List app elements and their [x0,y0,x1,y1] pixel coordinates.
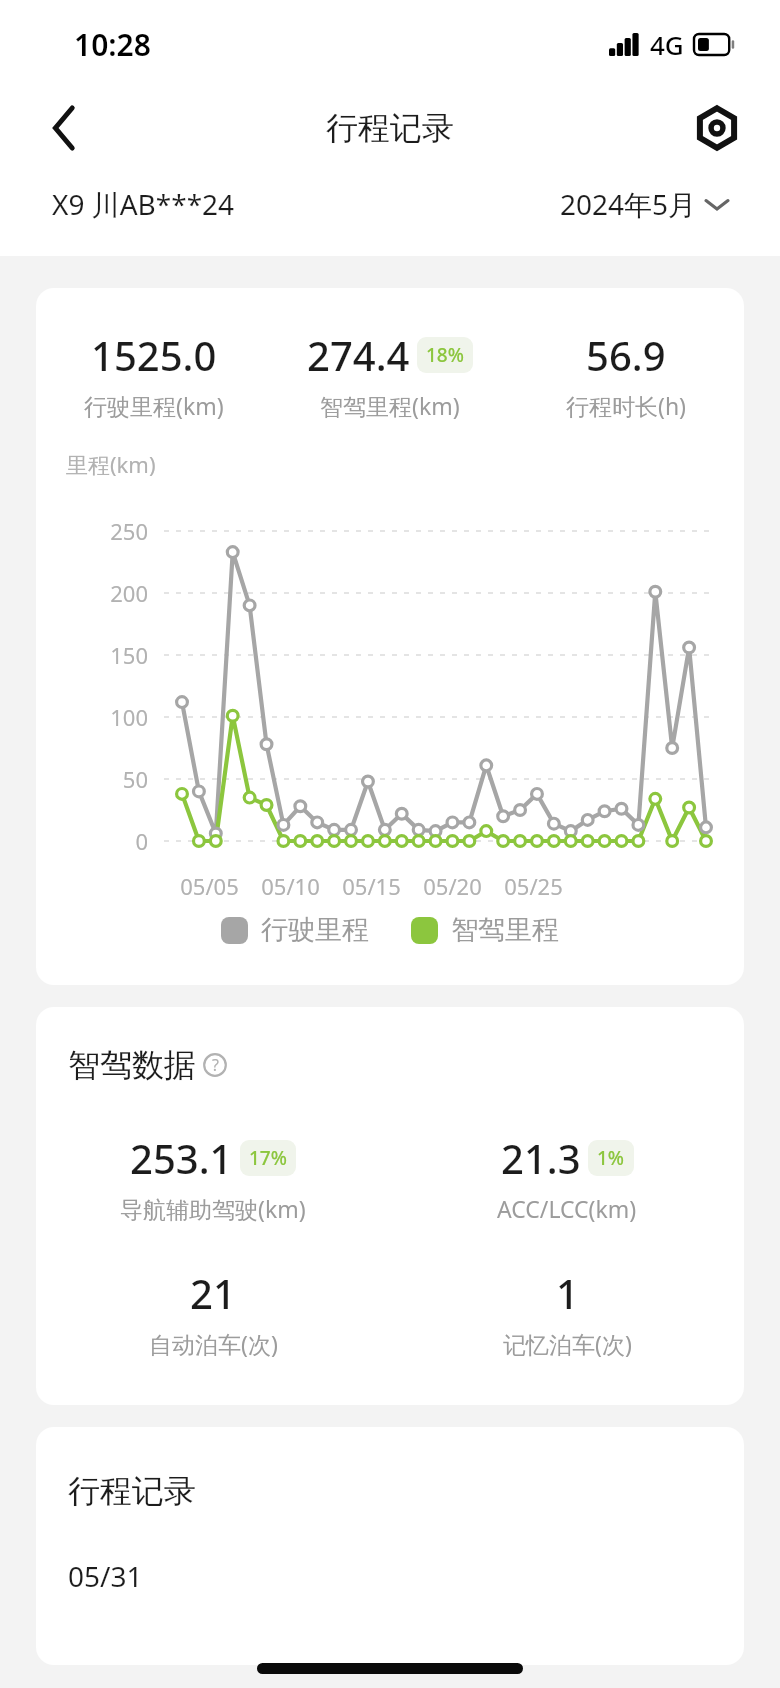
staticText: 里程(km) [66,449,156,479]
staticText: 自动泊车(次) [149,1328,278,1359]
staticText: 智驾里程(km) [320,390,460,421]
staticText: 行程记录 [326,108,454,148]
staticText: 18% [426,342,464,368]
staticText: 导航辅助驾驶(km) [120,1193,306,1224]
staticText: 4G [650,27,684,62]
staticText: 1525.0 [91,328,217,382]
staticText: 行驶里程 [261,913,369,947]
button[interactable]: Info [201,1051,229,1079]
staticText: 274.4 [307,328,410,382]
staticText: 2024年5月 [560,185,697,223]
staticText: 行驶里程(km) [84,390,224,421]
staticText: 智驾里程 [451,913,559,947]
staticText: X9 川AB***24 [52,185,235,223]
staticText: 100 [36,702,148,732]
button[interactable]: 2024年5月 [560,185,728,223]
staticText: 21.3 [501,1131,581,1185]
staticText: 17% [249,1145,287,1171]
staticText: ACC/LCC(km) [497,1193,637,1224]
staticText: 05/25 [493,871,574,901]
staticText: ? [212,1054,219,1076]
staticText: 200 [36,578,148,608]
staticText: 行程记录 [68,1471,196,1511]
staticText: 150 [36,640,148,670]
staticText: 05/31 [68,1557,143,1595]
staticText: 10:28 [74,24,151,65]
staticText: 05/20 [412,871,493,901]
staticText: 05/05 [169,871,250,901]
staticText: 1% [597,1145,625,1171]
staticText: 05/10 [250,871,331,901]
staticText: 21 [190,1266,236,1320]
staticText: 智驾数据 [68,1045,196,1085]
staticText: 记忆泊车(次) [503,1328,632,1359]
staticText: 1 [556,1266,579,1320]
staticText: 56.9 [586,328,666,382]
staticText: 50 [36,764,148,794]
staticText: 253.1 [130,1131,233,1185]
staticText: 250 [36,516,148,546]
button[interactable]: Back [36,99,94,157]
staticText: 0 [36,826,148,856]
staticText: 行程时长(h) [566,390,687,421]
button[interactable]: Settings [688,99,746,157]
staticText: 05/15 [331,871,412,901]
